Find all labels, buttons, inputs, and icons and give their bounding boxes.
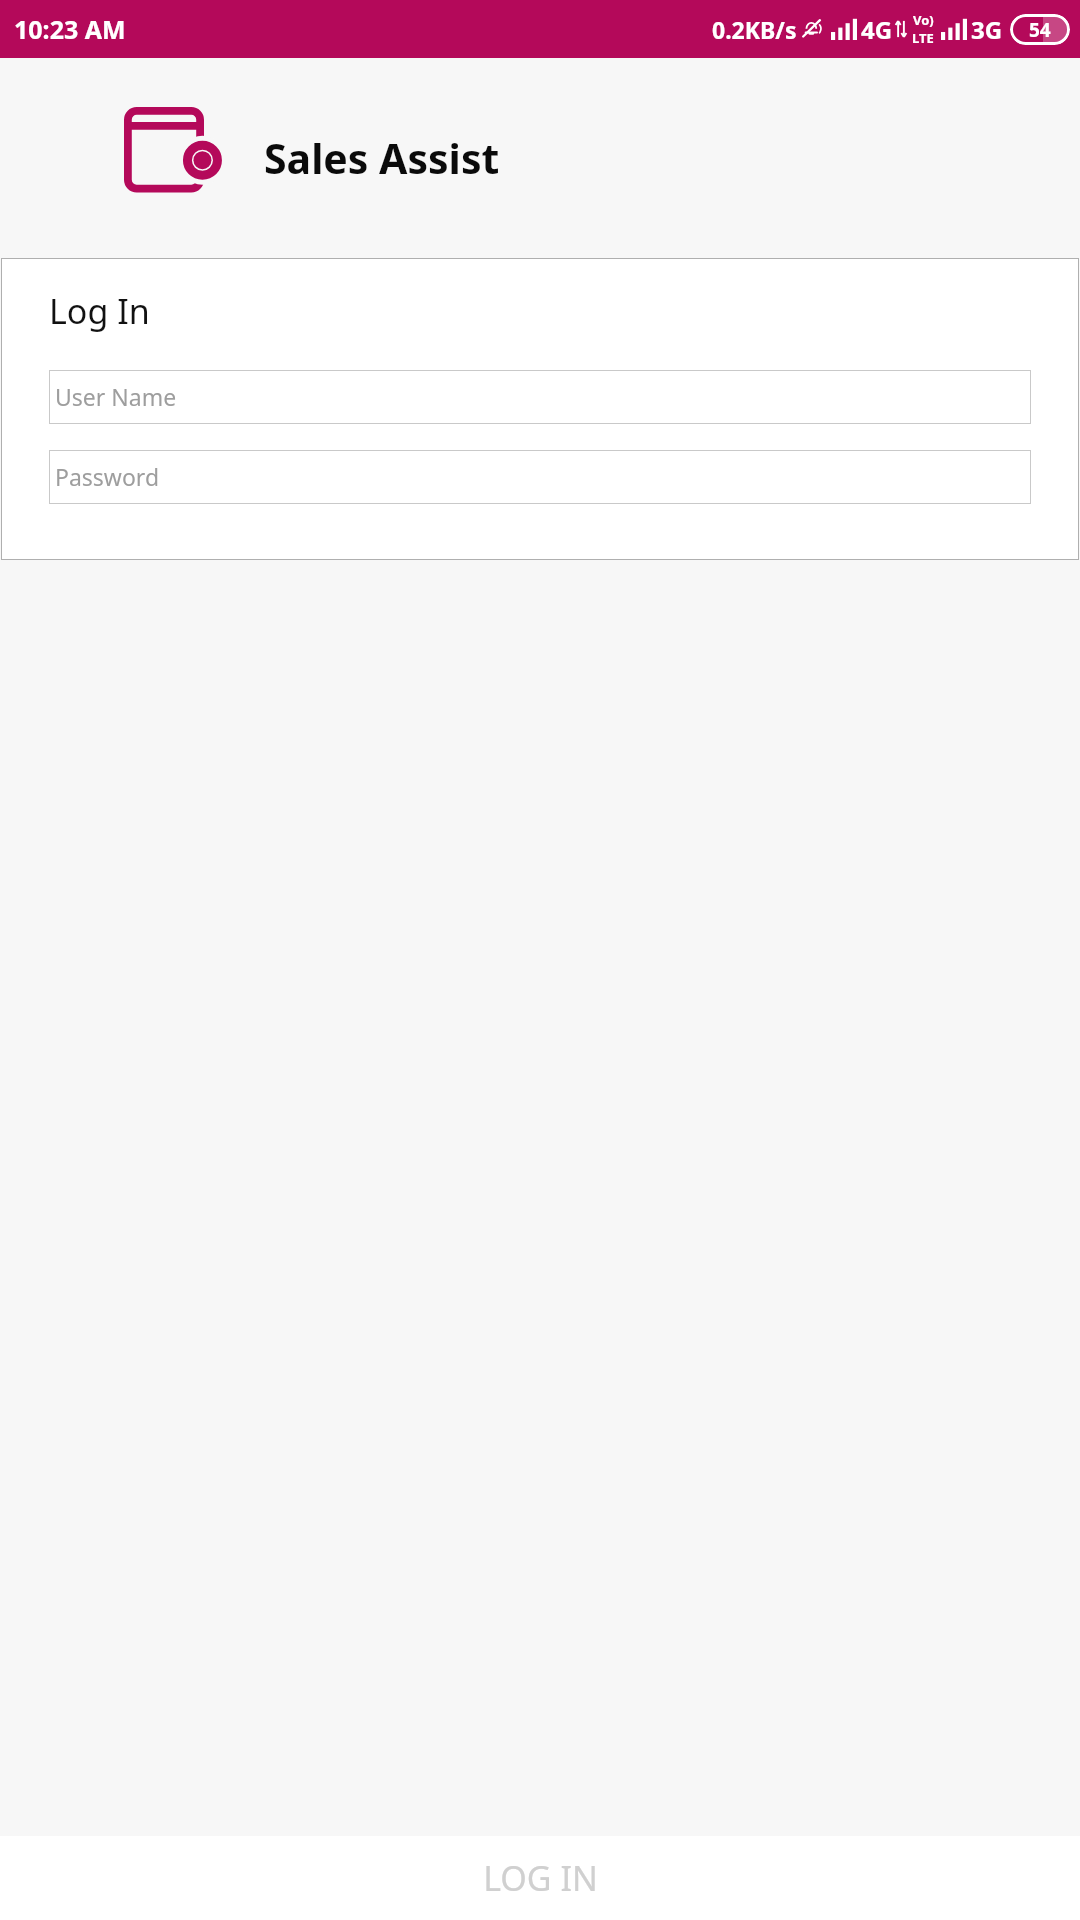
staticText: LTE (912, 29, 934, 47)
staticText: Sales Assist (264, 130, 500, 186)
staticText: Log In (49, 288, 150, 334)
staticText: User Name (55, 381, 177, 412)
staticText: LOG IN (483, 1855, 598, 1901)
staticText: 3G (971, 13, 1003, 46)
staticText: 54 (1029, 17, 1051, 43)
button[interactable]: User Name (49, 370, 1031, 424)
staticText: 0.2KB/s (712, 14, 797, 45)
button[interactable]: LOG IN (0, 1836, 1080, 1920)
staticText: 10:23 AM (14, 12, 126, 46)
button[interactable]: Password (49, 450, 1031, 504)
staticText: 4G (861, 13, 893, 46)
staticText: Password (55, 461, 160, 492)
staticText: Vo) (913, 11, 934, 29)
